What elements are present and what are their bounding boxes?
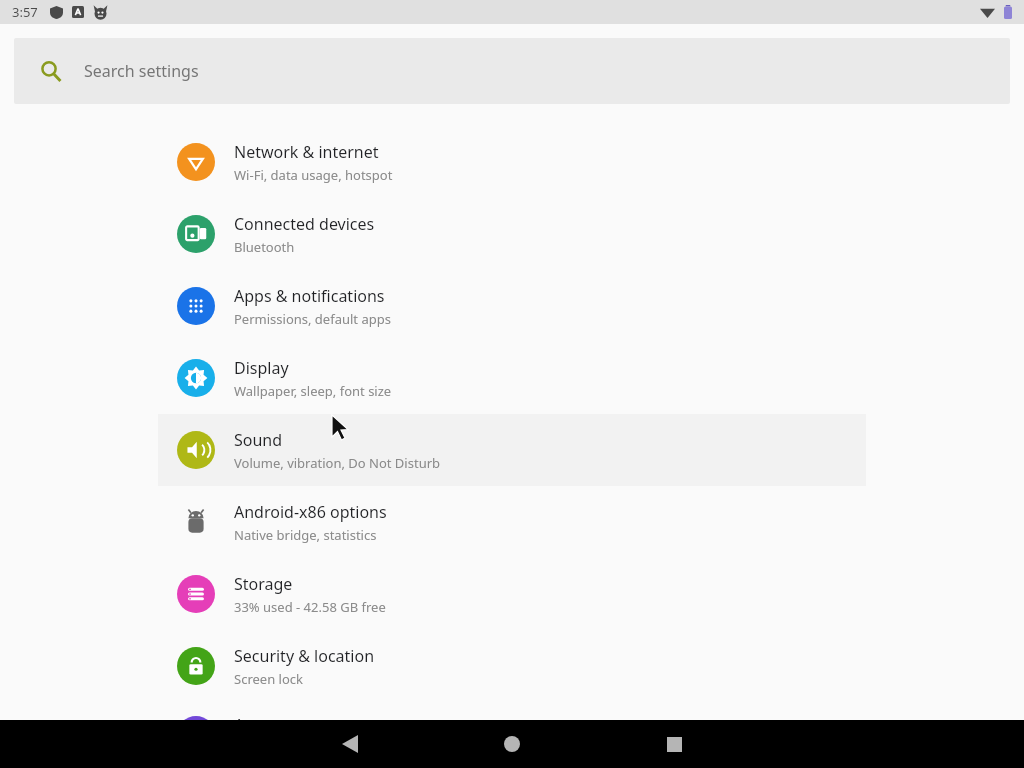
staticText: Android-x86 options <box>234 501 387 523</box>
staticText: Bluetooth <box>234 238 295 256</box>
staticText: 3:57 <box>12 3 38 21</box>
button[interactable]: Apps & notifications <box>158 270 866 342</box>
staticText: Screen lock <box>234 670 303 688</box>
staticText: Search settings <box>84 60 199 82</box>
staticText: Apps & notifications <box>234 285 385 307</box>
staticText: Display <box>234 357 289 379</box>
staticText: Native bridge, statistics <box>234 526 377 544</box>
button[interactable]: Network & internet <box>158 126 866 198</box>
button[interactable]: Search settings <box>14 38 1010 104</box>
button[interactable]: Home <box>484 720 540 768</box>
staticText: Network & internet <box>234 141 379 163</box>
staticText: Accounts <box>234 714 303 736</box>
staticText: Volume, vibration, Do Not Disturb <box>234 454 441 472</box>
button[interactable]: Back <box>322 720 378 768</box>
button[interactable]: Security & location <box>158 630 866 702</box>
button[interactable]: Android-x86 options <box>158 486 866 558</box>
staticText: 33% used - 42.58 GB free <box>234 598 386 616</box>
button[interactable]: Sound <box>158 414 866 486</box>
staticText: Wallpaper, sleep, font size <box>234 382 392 400</box>
button[interactable]: Display <box>158 342 866 414</box>
button[interactable]: Recents <box>646 720 702 768</box>
button[interactable]: Storage <box>158 558 866 630</box>
button[interactable]: Connected devices <box>158 198 866 270</box>
staticText: Storage <box>234 573 293 595</box>
staticText: Permissions, default apps <box>234 310 391 328</box>
staticText: Sound <box>234 429 283 451</box>
staticText: Connected devices <box>234 213 375 235</box>
staticText: Security & location <box>234 645 375 667</box>
staticText: Wi-Fi, data usage, hotspot <box>234 166 393 184</box>
button[interactable]: Accounts <box>158 702 866 768</box>
